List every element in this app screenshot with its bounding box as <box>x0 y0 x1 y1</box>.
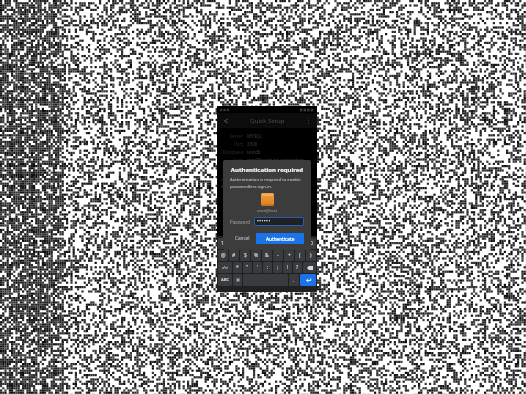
button[interactable]: & <box>262 250 272 261</box>
staticText: ABC <box>221 277 230 283</box>
staticText: Authenticate <box>266 236 295 242</box>
staticText: user@host <box>257 208 278 213</box>
button[interactable]: % <box>251 250 261 261</box>
staticText: + <box>288 252 291 259</box>
staticText: # <box>232 252 236 259</box>
button[interactable]: 3 <box>237 238 246 249</box>
staticText: $ <box>244 252 247 259</box>
staticText: testdb <box>247 149 261 155</box>
button[interactable]: 2 <box>227 238 236 249</box>
button[interactable]: 0 <box>307 238 316 249</box>
button[interactable]: ? <box>293 262 302 273</box>
button[interactable]: ) <box>306 250 316 261</box>
staticText: =\< <box>222 265 229 270</box>
button[interactable]: ; <box>273 262 282 273</box>
staticText: & <box>265 252 269 259</box>
staticText: - <box>277 252 279 259</box>
button[interactable]: Keyboard settings <box>233 274 242 286</box>
button[interactable]: * <box>233 262 242 273</box>
button[interactable]: Cancel <box>230 232 255 244</box>
staticText: Cancel <box>235 235 250 241</box>
button[interactable]: 6 <box>267 238 276 249</box>
staticText: 8 <box>290 240 293 247</box>
button[interactable]: 4 <box>247 238 256 249</box>
staticText: " <box>246 264 249 271</box>
staticText: Require Preferred <box>247 165 288 171</box>
staticText: . <box>293 277 295 284</box>
button[interactable]: " <box>243 262 252 273</box>
button[interactable]: 7 <box>277 238 286 249</box>
staticText: Password <box>230 219 250 225</box>
staticText: Server <box>229 133 243 139</box>
button[interactable]: Back <box>220 115 231 126</box>
staticText: root@localhost-connection <box>247 157 304 163</box>
button[interactable]: ABC <box>218 274 232 286</box>
staticText: ! <box>287 264 289 271</box>
button[interactable]: - <box>273 250 283 261</box>
staticText: Port <box>234 141 243 147</box>
button[interactable]: $ <box>240 250 250 261</box>
staticText: 0 <box>310 240 313 247</box>
button[interactable]: 9 <box>297 238 306 249</box>
staticText: * <box>236 264 239 271</box>
button[interactable]: ' <box>253 262 262 273</box>
button[interactable]: ( <box>295 250 305 261</box>
button[interactable]: =\< <box>218 262 232 273</box>
staticText: SSL Mode <box>222 165 243 171</box>
staticText: Quick Setup <box>250 117 285 125</box>
staticText: 7 <box>280 240 283 247</box>
button[interactable]: . <box>289 274 299 286</box>
button[interactable]: 1 <box>218 238 226 249</box>
staticText: % <box>254 252 259 259</box>
staticText: User <box>233 157 243 163</box>
button[interactable]: Enter <box>300 274 316 286</box>
staticText: : <box>267 264 269 271</box>
staticText: 6 <box>270 240 273 247</box>
button[interactable]: : <box>263 262 272 273</box>
button[interactable]: + <box>284 250 294 261</box>
button[interactable]: Backspace <box>303 262 316 273</box>
staticText: ' <box>257 264 259 271</box>
staticText: •••••• <box>257 218 271 225</box>
staticText: 9 <box>300 240 303 247</box>
staticText: ) <box>310 252 312 259</box>
button[interactable]: @ <box>218 250 228 261</box>
staticText: MYSQL <box>247 133 262 139</box>
staticText: @ <box>221 252 226 259</box>
button[interactable]: 8 <box>287 238 296 249</box>
button[interactable]: •••••• <box>254 217 304 226</box>
button[interactable]: # <box>229 250 239 261</box>
staticText: ? <box>296 264 299 271</box>
staticText: 1 <box>221 240 224 247</box>
staticText: Authentication is required to enable pas… <box>230 177 304 189</box>
button[interactable]: ! <box>283 262 292 273</box>
staticText: 3306 <box>247 141 258 147</box>
staticText: ( <box>299 252 301 259</box>
button[interactable]: 5 <box>257 238 266 249</box>
staticText: Advanced <box>221 177 242 183</box>
staticText: Authentication required <box>230 166 304 174</box>
button[interactable]: Authenticate <box>256 233 304 244</box>
button[interactable]: More options <box>303 115 314 126</box>
staticText: Database <box>223 149 243 155</box>
staticText: ; <box>277 264 279 271</box>
staticText: 5 <box>260 240 263 247</box>
